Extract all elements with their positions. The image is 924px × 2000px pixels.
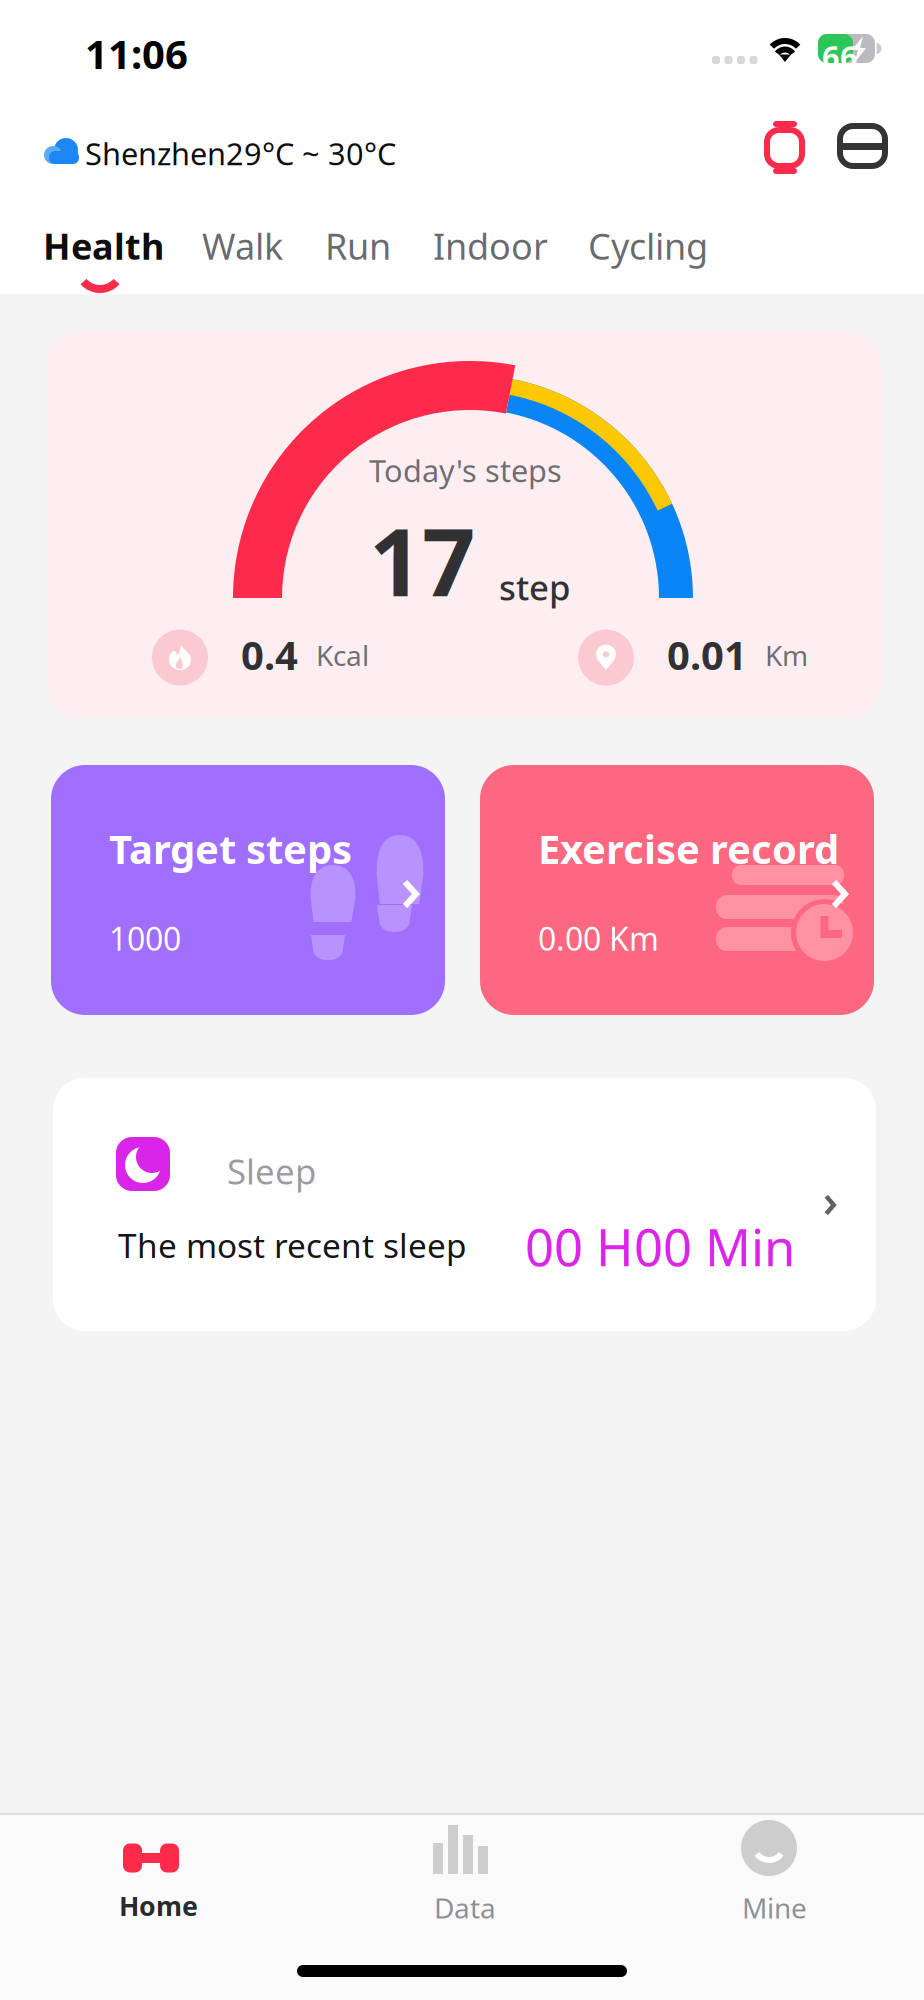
staticText: 11:06 bbox=[85, 27, 188, 80]
staticText: Indoor bbox=[433, 222, 548, 270]
staticText: The most recent sleep bbox=[118, 1223, 467, 1267]
staticText: 00 H00 Min bbox=[525, 1213, 795, 1280]
button[interactable]: Walk bbox=[202, 222, 283, 270]
staticText: Km bbox=[765, 636, 808, 674]
staticText: Exercise record bbox=[538, 822, 839, 875]
button[interactable]: Target steps 1000 bbox=[51, 765, 445, 1015]
button[interactable]: Watch device bbox=[767, 121, 803, 174]
staticText: 0.4 bbox=[241, 628, 298, 681]
button[interactable]: Cycling bbox=[588, 222, 708, 270]
staticText: Today's steps bbox=[369, 450, 562, 491]
staticText: Target steps bbox=[109, 822, 352, 875]
button[interactable]: Home bbox=[0, 1813, 308, 1933]
button[interactable]: Health bbox=[43, 222, 157, 300]
staticText: 1000 bbox=[109, 917, 181, 959]
staticText: step bbox=[499, 564, 570, 610]
staticText: Sleep bbox=[227, 1148, 316, 1194]
staticText: 0.01 bbox=[667, 628, 747, 681]
button[interactable]: Indoor bbox=[433, 222, 548, 270]
staticText: Data bbox=[434, 1889, 496, 1926]
staticText: Walk bbox=[202, 222, 283, 270]
button[interactable]: Run bbox=[325, 222, 391, 270]
staticText: 0.00 Km bbox=[538, 917, 659, 959]
staticText: Home bbox=[119, 1888, 198, 1923]
staticText: 17 bbox=[369, 498, 475, 622]
button[interactable]: Exercise record 0.00 Km bbox=[480, 765, 874, 1015]
staticText: Run bbox=[325, 222, 391, 270]
button[interactable]: Sleep bbox=[53, 1078, 876, 1331]
button[interactable]: Body scale bbox=[837, 126, 888, 167]
staticText: Kcal bbox=[316, 636, 369, 674]
staticText: Mine bbox=[742, 1889, 807, 1926]
staticText: 66 bbox=[822, 36, 858, 77]
staticText: Cycling bbox=[588, 222, 708, 270]
staticText: Health bbox=[43, 222, 164, 270]
button[interactable]: Data bbox=[308, 1813, 616, 1933]
button[interactable]: Mine bbox=[616, 1813, 924, 1933]
staticText: Shenzhen29°C ~ 30°C bbox=[85, 133, 396, 174]
